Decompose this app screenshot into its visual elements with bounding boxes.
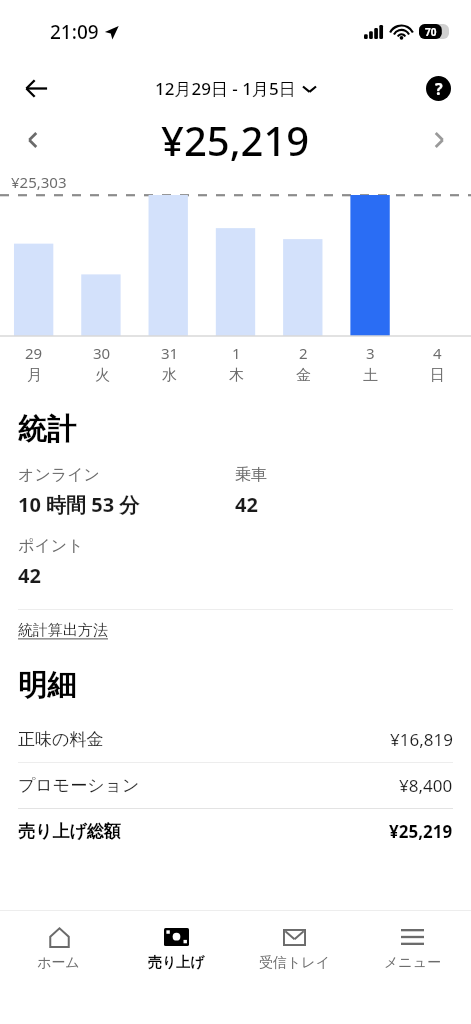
button[interactable]: Help [417,67,459,109]
staticText: 2 [299,343,308,363]
button[interactable]: 29 [0,343,68,385]
staticText: 受信トレイ [259,954,330,972]
staticText: ¥25,303 [11,172,67,192]
staticText: 金 [296,366,311,385]
staticText: 売り上げ総額 [18,821,121,842]
staticText: 10 時間 53 分 [18,491,140,518]
staticText: 42 [18,562,41,589]
staticText: ポイント [18,536,84,556]
button[interactable]: 2 [270,343,337,385]
staticText: 売り上げ [148,954,205,972]
staticText: 31 [161,343,179,363]
staticText: ¥25,219 [161,113,310,165]
button[interactable]: 売り上げ [117,911,235,972]
button[interactable]: プロモーション [18,763,453,808]
staticText: 月 [27,366,42,385]
button[interactable]: 正味の料金 [18,717,453,762]
button[interactable]: 統計算出方法 [18,621,108,640]
button[interactable]: 31 [136,343,203,385]
staticText: 1 [232,343,241,363]
staticText: 12月29日 - 1月5日 [155,77,296,100]
button[interactable]: Back [14,66,58,110]
staticText: 30 [93,343,111,363]
button[interactable]: 売り上げ総額 [18,809,453,854]
staticText: 土 [363,366,378,385]
staticText: ¥25,219 [389,820,453,843]
button[interactable]: 3 [337,343,404,385]
button[interactable]: Next week [419,120,459,160]
button[interactable]: 4 [404,343,471,385]
staticText: 70 [425,25,437,39]
staticText: 日 [430,366,445,385]
staticText: 統計 [18,411,76,448]
staticText: ¥8,400 [399,774,453,797]
staticText: プロモーション [18,775,140,796]
staticText: 3 [366,343,375,363]
staticText: 21:09 [50,19,99,45]
staticText: 火 [95,366,110,385]
staticText: 水 [162,366,177,385]
staticText: ? [435,78,443,100]
button[interactable]: 30 [68,343,136,385]
staticText: オンライン [18,465,100,485]
staticText: 正味の料金 [18,729,104,750]
staticText: 明細 [18,667,76,704]
button[interactable]: 12月29日 - 1月5日 [155,77,316,100]
button[interactable]: メニュー [353,911,471,972]
button[interactable]: ホーム [0,911,117,972]
staticText: 29 [25,343,43,363]
button[interactable]: 1 [203,343,270,385]
staticText: 乗車 [235,465,267,485]
staticText: ホーム [37,954,80,972]
staticText: 42 [235,491,258,518]
staticText: ¥16,819 [390,728,453,751]
staticText: 木 [229,366,244,385]
staticText: 統計算出方法 [18,621,108,640]
button[interactable]: Previous week [12,120,52,160]
staticText: 4 [433,343,442,363]
button[interactable]: 受信トレイ [235,911,353,972]
staticText: メニュー [384,954,441,972]
